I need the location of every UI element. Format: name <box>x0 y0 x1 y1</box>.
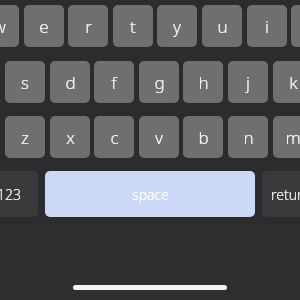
button[interactable]: Return <box>262 171 300 217</box>
staticText: return <box>271 185 300 204</box>
button[interactable]: u <box>202 5 242 47</box>
staticText: t <box>130 15 136 38</box>
button[interactable]: r <box>68 5 108 47</box>
staticText: c <box>110 126 119 149</box>
staticText: e <box>39 15 49 38</box>
staticText: k <box>289 71 298 94</box>
button[interactable]: Numbers <box>0 171 38 217</box>
button[interactable]: w <box>0 5 19 47</box>
staticText: g <box>154 71 165 94</box>
button[interactable]: f <box>94 61 134 103</box>
staticText: space <box>132 185 169 204</box>
button[interactable]: j <box>228 61 268 103</box>
staticText: y <box>173 15 181 38</box>
button[interactable]: d <box>50 61 90 103</box>
staticText: i <box>265 15 269 38</box>
staticText: s <box>21 71 29 94</box>
staticText: u <box>217 15 228 38</box>
button[interactable]: space <box>45 171 255 217</box>
button[interactable]: i <box>247 5 287 47</box>
button[interactable]: b <box>183 116 223 158</box>
button[interactable]: c <box>94 116 134 158</box>
button[interactable]: h <box>183 61 223 103</box>
button[interactable]: t <box>113 5 153 47</box>
staticText: z <box>21 126 29 149</box>
staticText: v <box>155 126 163 149</box>
staticText: b <box>198 126 209 149</box>
staticText: d <box>65 71 76 94</box>
staticText: x <box>66 126 75 149</box>
button[interactable]: y <box>157 5 197 47</box>
button[interactable]: x <box>50 116 90 158</box>
button[interactable]: o <box>291 5 300 47</box>
button[interactable]: g <box>139 61 179 103</box>
staticText: f <box>111 71 117 94</box>
button[interactable]: m <box>273 116 300 158</box>
staticText: j <box>246 71 250 94</box>
staticText: m <box>285 126 300 149</box>
staticText: n <box>243 126 254 149</box>
staticText: 123 <box>0 185 21 204</box>
staticText: h <box>198 71 209 94</box>
staticText: w <box>0 15 6 38</box>
button[interactable]: e <box>24 5 64 47</box>
button[interactable]: s <box>5 61 45 103</box>
button[interactable]: z <box>5 116 45 158</box>
button[interactable]: k <box>273 61 300 103</box>
button[interactable]: n <box>228 116 268 158</box>
staticText: r <box>85 15 92 38</box>
button[interactable]: v <box>139 116 179 158</box>
